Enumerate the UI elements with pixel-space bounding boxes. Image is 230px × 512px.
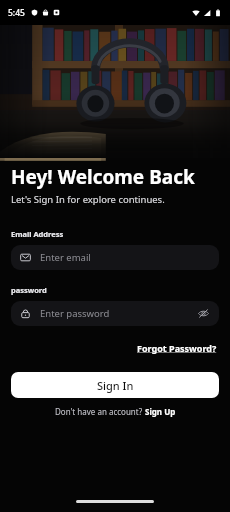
button[interactable]: Enter email [11,245,219,270]
staticText: Let's Sign In for explore continues. [11,193,165,206]
staticText: Enter password [40,307,110,320]
button[interactable]: Sign In [11,372,219,398]
button[interactable]: Enter password [11,301,219,326]
staticText: Email Address [11,229,64,239]
staticText: Sign In [97,378,134,393]
button[interactable]: Show password [197,307,210,320]
button[interactable]: Don't have an account? [11,406,219,417]
staticText: Forgot Password? [137,342,217,354]
staticText: Sign Up [145,406,176,417]
staticText: Enter email [40,251,91,264]
staticText: password [11,285,47,295]
staticText: Don't have an account? [55,406,145,417]
staticText: 5:45 [8,7,25,19]
staticText: Hey! Welcome Back [11,164,195,190]
button[interactable]: Forgot Password? [135,340,219,356]
